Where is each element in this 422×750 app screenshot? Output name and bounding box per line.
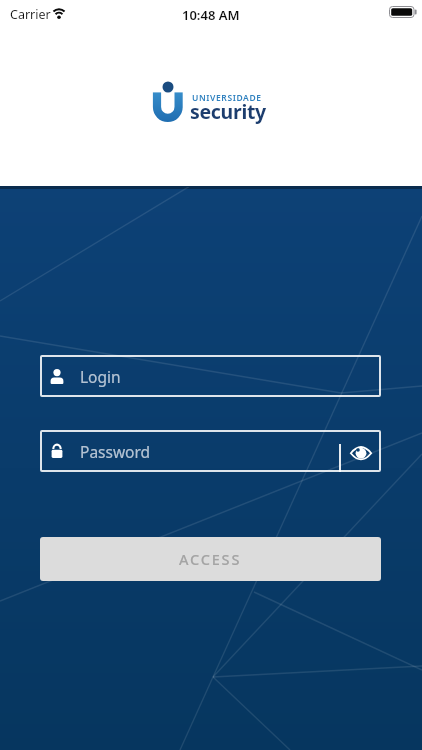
button[interactable]: Login: [40, 355, 381, 397]
button[interactable]: Password: [40, 430, 381, 472]
staticText: Carrier: [10, 6, 51, 23]
staticText: UNIVERSIDADE: [192, 92, 262, 104]
staticText: ACCESS: [179, 549, 242, 569]
staticText: 10:48 AM: [182, 6, 240, 24]
staticText: security: [190, 98, 266, 125]
staticText: Password: [80, 441, 151, 462]
staticText: Login: [80, 366, 121, 387]
button[interactable]: [350, 442, 372, 464]
button[interactable]: ACCESS: [40, 537, 381, 581]
